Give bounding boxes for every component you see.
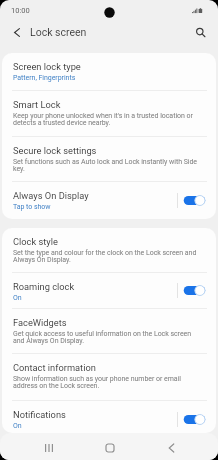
- staticText: 10:00: [11, 6, 30, 15]
- staticText: Lock screen: [30, 26, 87, 38]
- staticText: Get quick access to useful information o…: [13, 330, 192, 344]
- button[interactable]: Toggle Notifications: [183, 411, 211, 428]
- staticText: Tap to show: [13, 203, 51, 210]
- staticText: Set functions such as Auto lock and Lock…: [13, 158, 197, 172]
- button[interactable]: FaceWidgets: [2, 309, 216, 353]
- staticText: Keep your phone unlocked when it's in a …: [13, 112, 193, 126]
- button[interactable]: Screen lock type: [2, 53, 216, 90]
- button[interactable]: Roaming clock: [2, 273, 216, 308]
- button[interactable]: Notifications: [2, 401, 216, 433]
- button[interactable]: Contact information: [2, 354, 216, 400]
- staticText: Notifications: [13, 409, 66, 420]
- button[interactable]: Home: [97, 435, 123, 460]
- staticText: Contact information: [13, 362, 96, 373]
- button[interactable]: Toggle Always On Display: [183, 192, 211, 209]
- staticText: Roaming clock: [13, 281, 75, 292]
- button[interactable]: Always On Display: [2, 182, 216, 219]
- staticText: Always On Display: [13, 190, 89, 201]
- staticText: Pattern, Fingerprints: [13, 74, 76, 81]
- button[interactable]: Search: [189, 21, 211, 43]
- button[interactable]: Toggle Roaming clock: [183, 282, 211, 299]
- staticText: Show information such as your phone numb…: [13, 375, 181, 389]
- staticText: FaceWidgets: [13, 317, 67, 328]
- staticText: Screen lock type: [13, 61, 81, 72]
- staticText: Smart Lock: [13, 99, 61, 110]
- staticText: Set the type and colour for the clock on…: [13, 249, 197, 263]
- button[interactable]: Clock style: [2, 228, 216, 272]
- button[interactable]: Smart Lock: [2, 91, 216, 136]
- button[interactable]: Back: [6, 21, 27, 43]
- button[interactable]: Secure lock settings: [2, 137, 216, 181]
- staticText: On: [13, 422, 22, 429]
- button[interactable]: Back: [158, 435, 184, 460]
- staticText: Clock style: [13, 236, 58, 247]
- staticText: Secure lock settings: [13, 145, 97, 156]
- button[interactable]: Recent apps: [36, 435, 62, 460]
- staticText: On: [13, 294, 22, 301]
